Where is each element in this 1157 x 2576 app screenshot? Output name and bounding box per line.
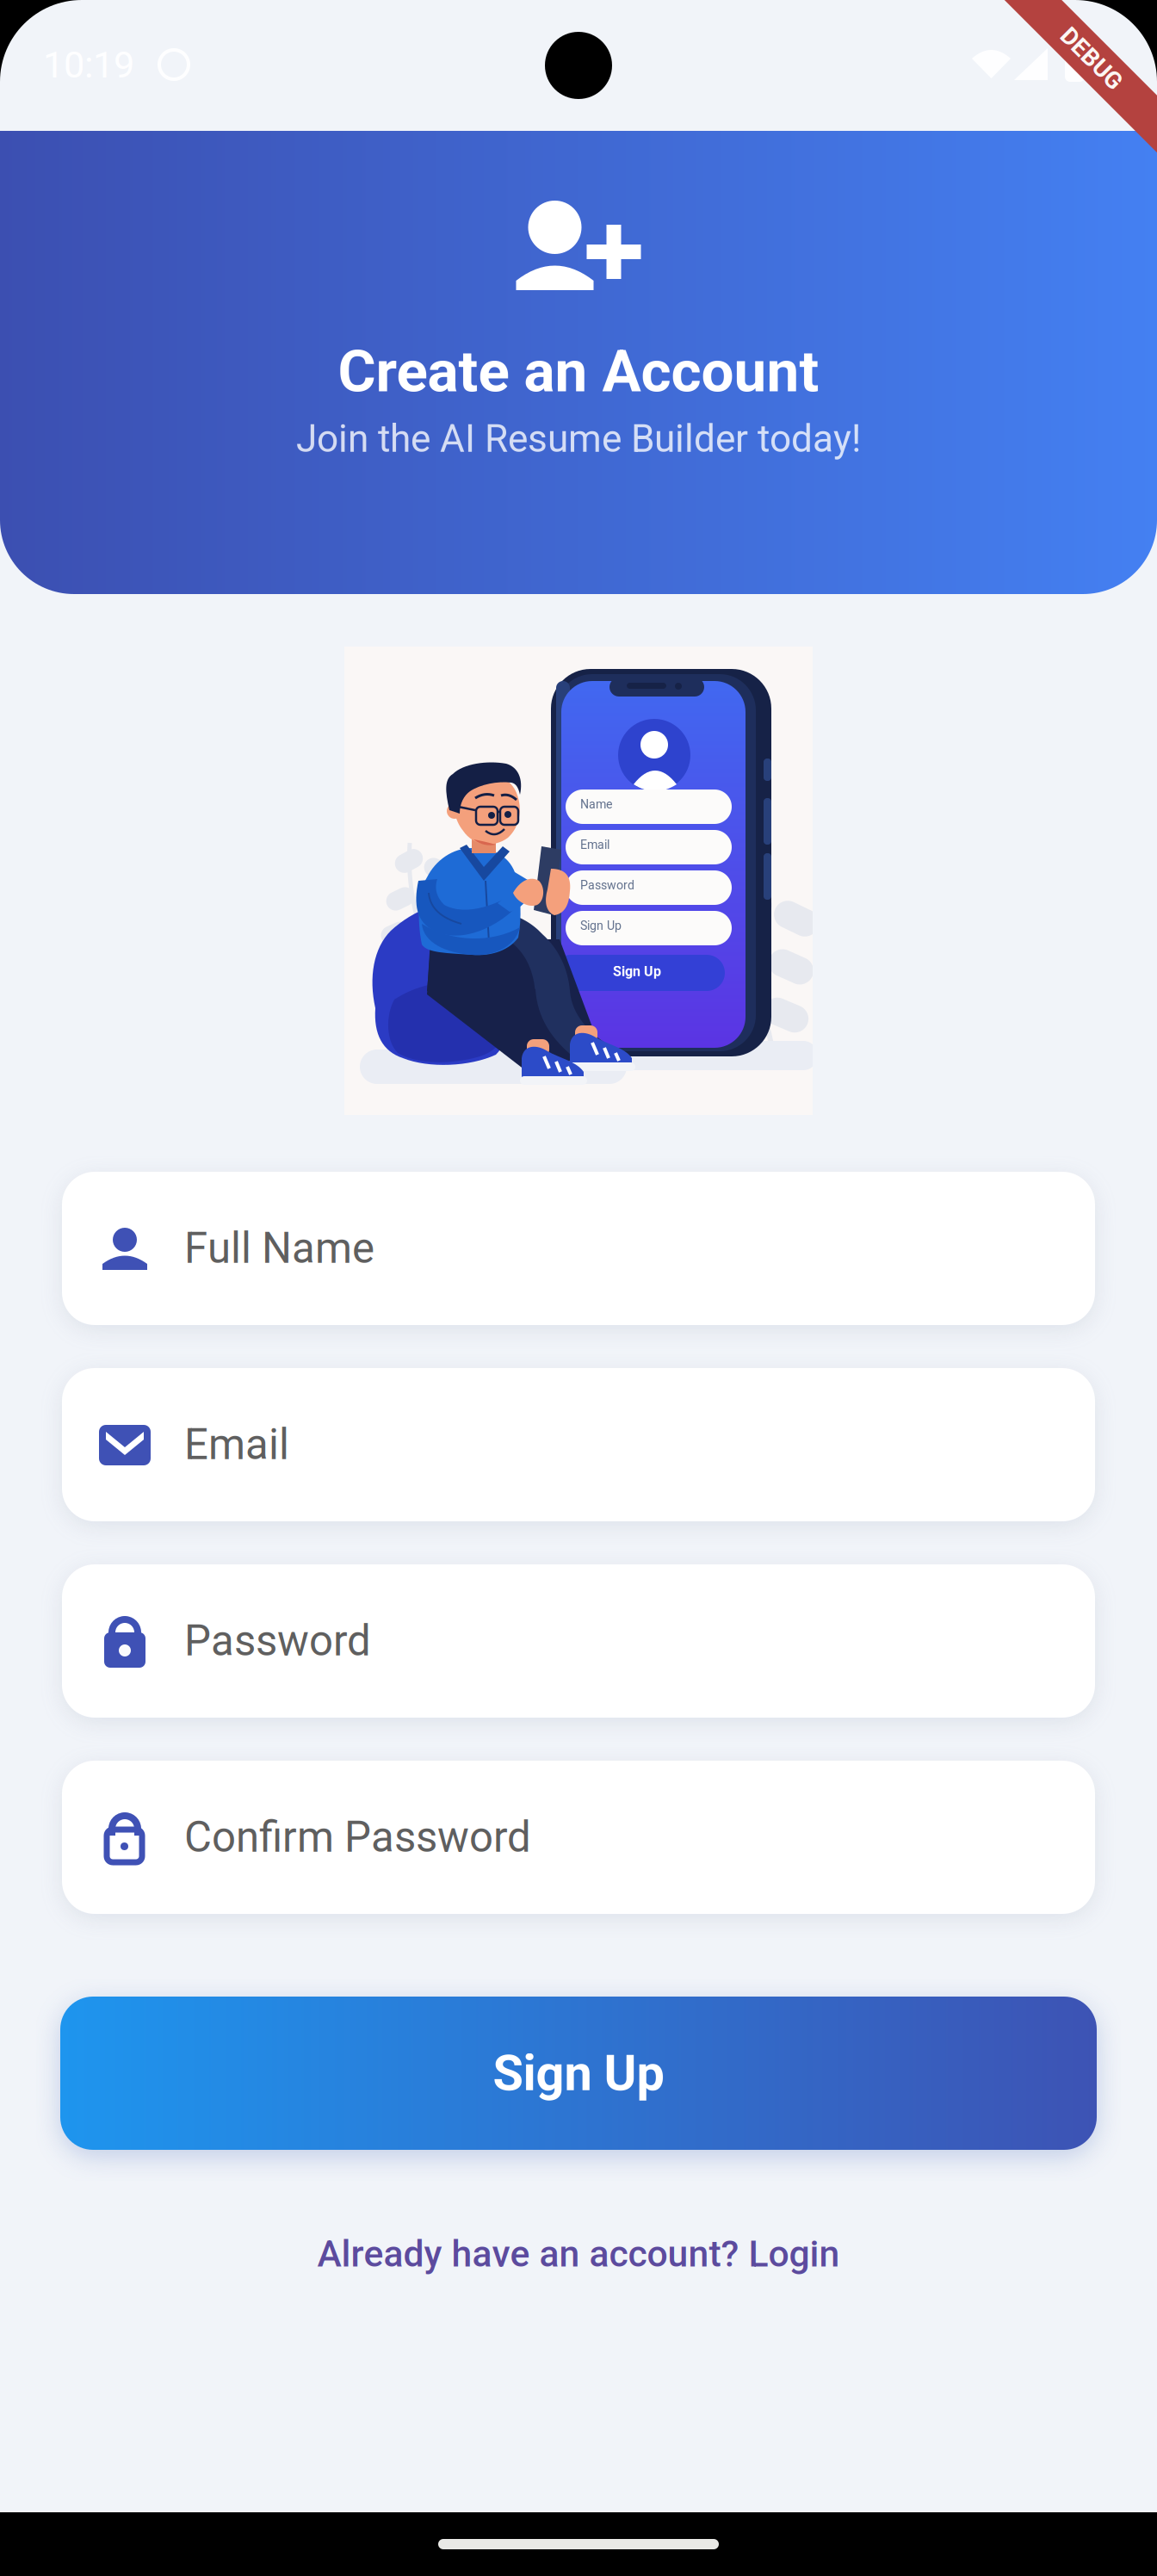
button[interactable]: Full Name <box>62 1172 1095 1325</box>
button[interactable]: Already have an account? Login <box>317 2232 840 2276</box>
staticText: DEBUG <box>1053 44 1130 73</box>
button[interactable]: Confirm Password <box>62 1761 1095 1914</box>
staticText: Sign Up <box>613 963 661 980</box>
button[interactable]: Email <box>62 1368 1095 1521</box>
button[interactable]: Sign Up <box>60 1997 1097 2150</box>
button[interactable]: Password <box>62 1564 1095 1718</box>
staticText: Create an Account <box>338 337 819 405</box>
staticText: Email <box>580 838 609 852</box>
staticText: Full Name <box>184 1224 374 1273</box>
staticText: 10:19 <box>43 43 134 87</box>
staticText: Already have an account? Login <box>317 2232 840 2276</box>
staticText: Confirm Password <box>184 1812 531 1862</box>
staticText: Join the AI Resume Builder today! <box>296 417 861 461</box>
staticText: Name <box>580 797 612 812</box>
staticText: Sign Up <box>580 919 622 933</box>
staticText: Password <box>580 878 634 892</box>
staticText: Sign Up <box>493 2044 664 2102</box>
staticText: Email <box>184 1420 289 1469</box>
staticText: Password <box>184 1616 371 1666</box>
